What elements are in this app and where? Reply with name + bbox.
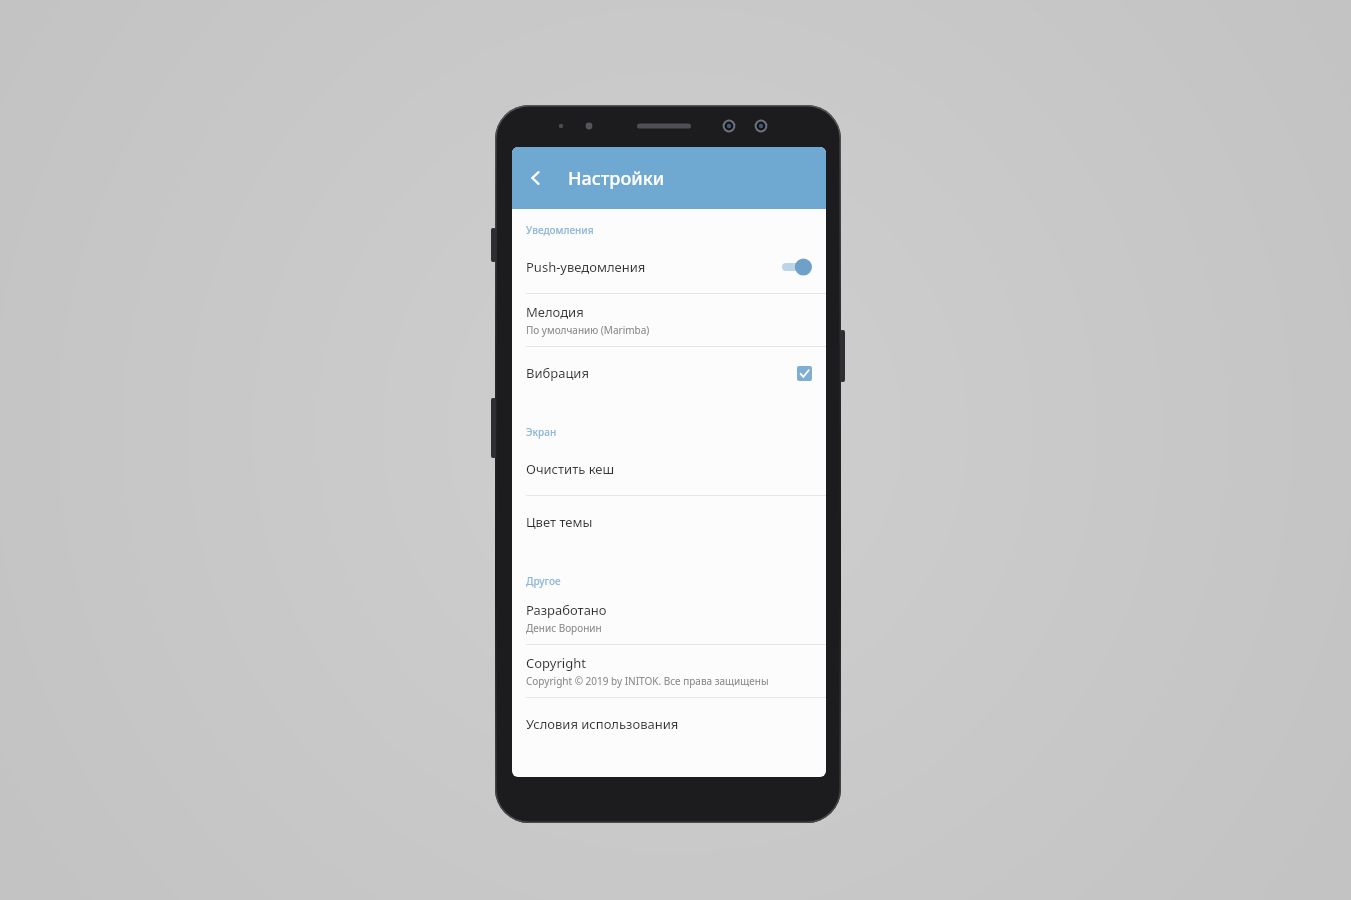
staticText: Разработано xyxy=(526,601,607,619)
staticText: Другое xyxy=(526,574,561,588)
staticText: По умолчанию (Marimba) xyxy=(526,323,650,337)
button[interactable]: Back xyxy=(516,158,556,198)
staticText: Мелодия xyxy=(526,303,584,321)
staticText: Очистить кеш xyxy=(526,460,615,478)
button[interactable]: Условия использования xyxy=(512,698,826,750)
staticText: Copyright © 2019 by INITOK. Все права за… xyxy=(526,674,769,688)
staticText: Денис Воронин xyxy=(526,621,602,635)
staticText: Настройки xyxy=(568,166,665,191)
button[interactable]: Очистить кеш xyxy=(512,443,826,495)
staticText: Экран xyxy=(526,425,557,439)
button[interactable]: Мелодия xyxy=(512,294,826,346)
button[interactable]: Copyright xyxy=(512,645,826,697)
button[interactable]: Цвет темы xyxy=(512,496,826,548)
staticText: Вибрация xyxy=(526,364,797,382)
staticText: Push-уведомления xyxy=(526,258,780,276)
staticText: Copyright xyxy=(526,654,586,672)
staticText: Цвет темы xyxy=(526,513,593,531)
staticText: Уведомления xyxy=(526,223,594,237)
button[interactable]: Push-уведомления xyxy=(512,241,826,293)
button[interactable]: Разработано xyxy=(512,592,826,644)
button[interactable]: Вибрация xyxy=(512,347,826,399)
staticText: Условия использования xyxy=(526,715,679,733)
